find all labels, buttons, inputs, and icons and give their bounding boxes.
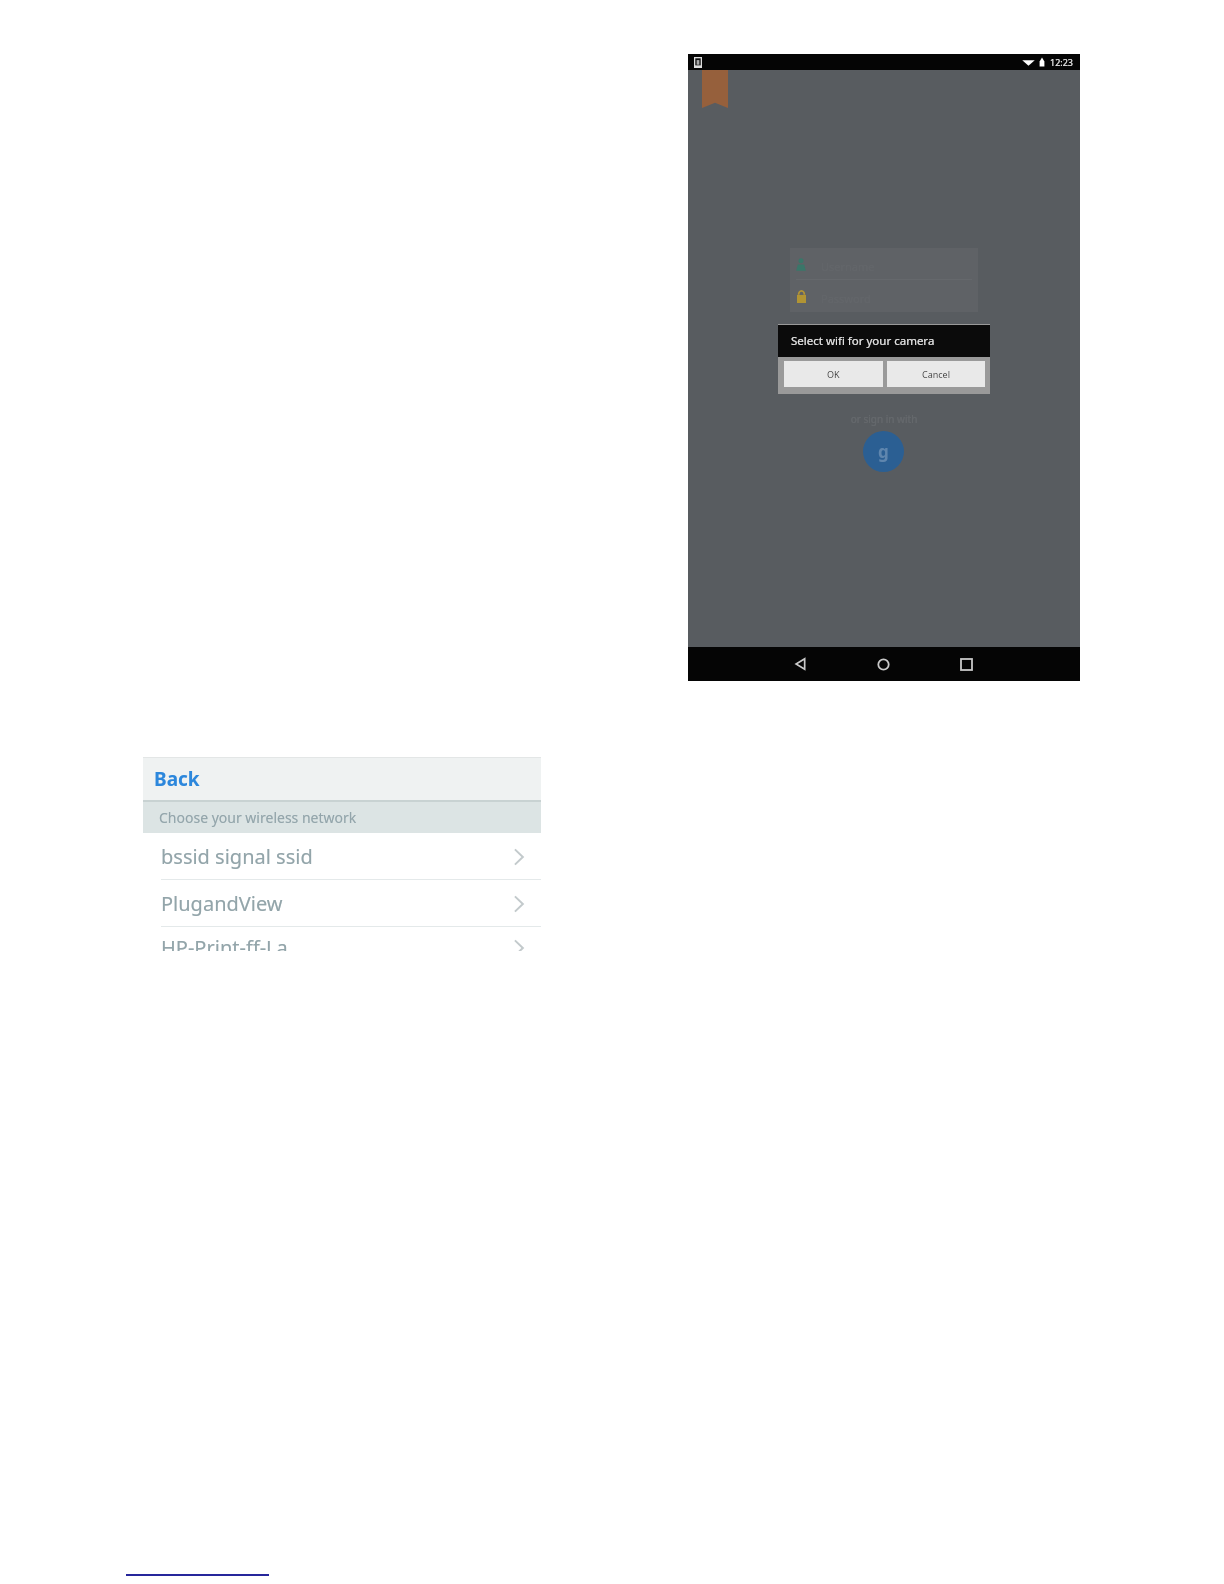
staticText: Cancel <box>922 368 951 380</box>
staticText: 12:23 <box>1050 56 1074 68</box>
button[interactable]: PlugandView <box>143 880 541 927</box>
staticText: Select wifi for your camera <box>791 333 935 349</box>
button[interactable]: Cancel <box>887 361 985 387</box>
staticText: Choose your wireless network <box>159 808 357 827</box>
button[interactable]: Back <box>783 647 817 681</box>
button[interactable]: Sign in with Google <box>863 431 904 472</box>
button[interactable]: OK <box>784 361 883 387</box>
staticText: HP-Print-ff-La <box>161 934 288 951</box>
staticText: OK <box>827 368 840 380</box>
button[interactable]: Back <box>143 757 541 801</box>
staticText: g <box>878 440 889 463</box>
staticText: Back <box>154 766 200 792</box>
button[interactable]: HP-Print-ff-La <box>143 927 541 951</box>
staticText: PlugandView <box>161 890 283 917</box>
button[interactable]: Home <box>866 647 900 681</box>
button[interactable]: bssid signal ssid <box>143 833 541 880</box>
button[interactable]: Recent apps <box>949 647 983 681</box>
staticText: bssid signal ssid <box>161 843 313 870</box>
